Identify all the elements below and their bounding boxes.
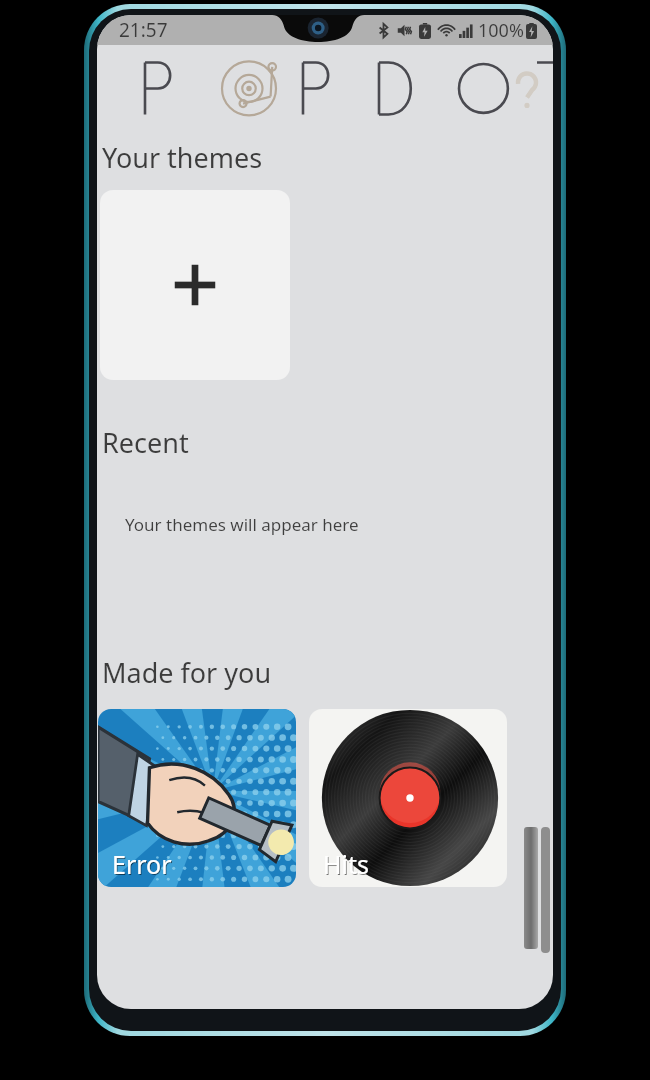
staticText: Hits [323, 847, 369, 881]
staticText: 100% [478, 18, 524, 43]
staticText: Hits [324, 848, 370, 882]
button[interactable]: Error [98, 709, 296, 887]
button[interactable] [100, 190, 290, 380]
staticText: Error [113, 848, 173, 882]
staticText: Your themes will appear here [125, 513, 359, 536]
staticText: Error [112, 847, 172, 881]
staticText: 21:57 [119, 17, 168, 43]
staticText: Recent [102, 424, 189, 461]
staticText: Made for you [102, 654, 272, 691]
staticText: Your themes [102, 139, 263, 176]
button[interactable]: Hits [309, 709, 507, 887]
